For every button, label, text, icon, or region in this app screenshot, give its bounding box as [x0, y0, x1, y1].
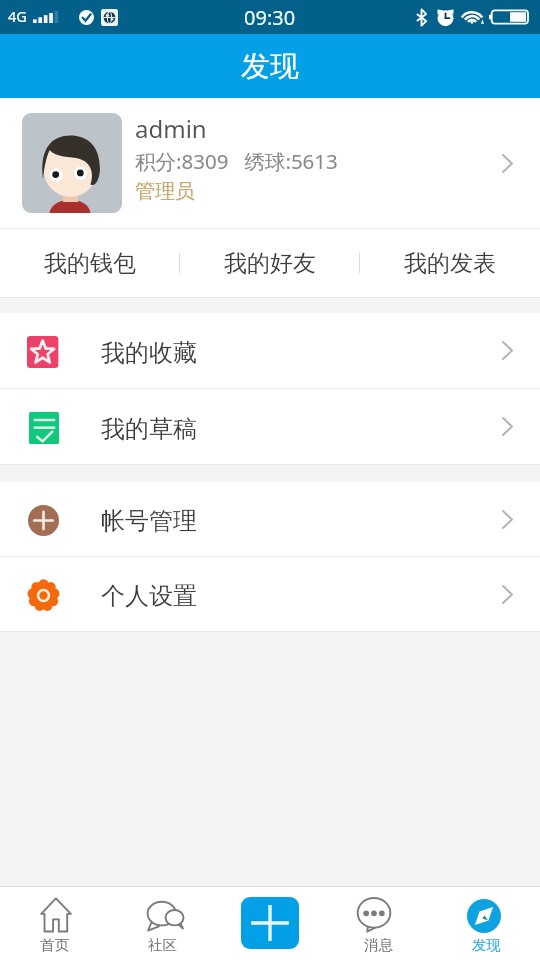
staticText: admin — [135, 112, 207, 145]
staticText: 个人设置 — [101, 581, 197, 611]
button[interactable]: 消息 — [324, 887, 432, 960]
button[interactable]: admin — [0, 98, 540, 228]
staticText: 4G — [8, 6, 27, 26]
button[interactable]: 我的草稿 — [0, 389, 540, 464]
staticText: 我的钱包 — [44, 249, 136, 278]
staticText: 我的草稿 — [101, 414, 197, 444]
button[interactable]: 发现 — [432, 887, 540, 960]
staticText: 积分:8309 绣球:5613 — [135, 147, 338, 175]
button[interactable]: 社区 — [108, 887, 216, 960]
button[interactable]: 我的发表 — [360, 229, 540, 297]
staticText: 消息 — [364, 936, 393, 954]
button[interactable]: 发布 — [216, 887, 324, 960]
staticText: 管理员 — [135, 179, 195, 204]
button[interactable]: 我的钱包 — [0, 229, 180, 297]
staticText: 我的收藏 — [101, 338, 197, 368]
staticText: 社区 — [148, 936, 177, 954]
staticText: 发现 — [472, 936, 501, 954]
staticText: 帐号管理 — [101, 506, 197, 536]
staticText: 09:30 — [244, 4, 296, 31]
staticText: 我的发表 — [404, 249, 496, 278]
staticText: 首页 — [40, 936, 69, 954]
staticText: 发现 — [241, 48, 299, 85]
staticText: 我的好友 — [224, 249, 316, 278]
button[interactable]: 我的收藏 — [0, 313, 540, 388]
button[interactable]: 帐号管理 — [0, 482, 540, 556]
button[interactable]: 我的好友 — [180, 229, 360, 297]
button[interactable]: 首页 — [0, 887, 108, 960]
button[interactable]: 个人设置 — [0, 557, 540, 631]
